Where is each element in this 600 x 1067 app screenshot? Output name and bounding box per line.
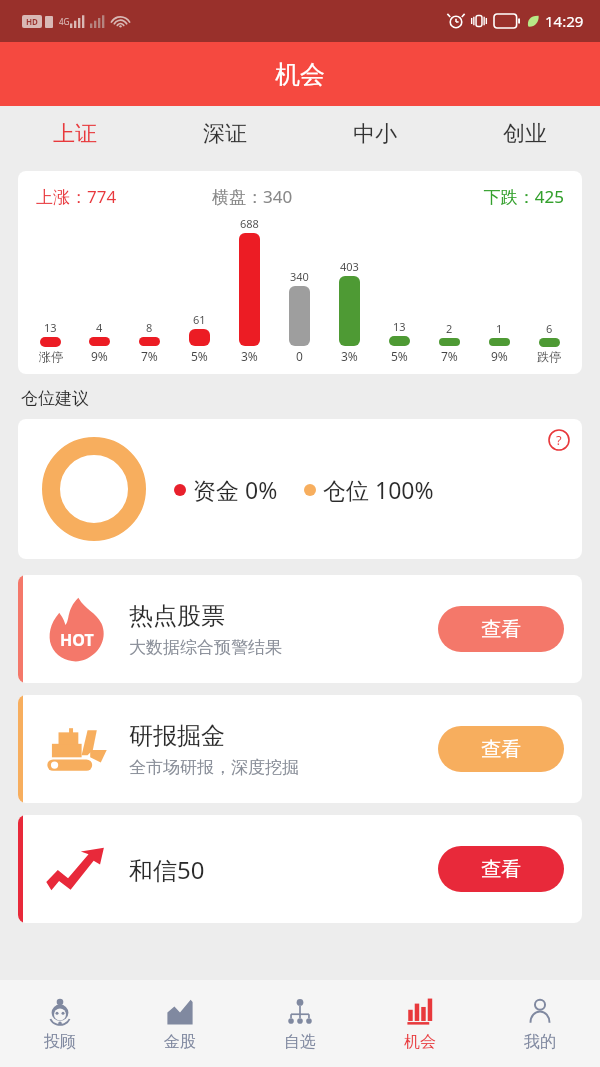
button[interactable]: 自选 — [240, 980, 360, 1067]
button[interactable]: 查看 — [438, 606, 564, 652]
staticText: 投顾 — [44, 1032, 76, 1052]
staticText: 跌停 — [537, 349, 561, 364]
staticText: 横盘：340 — [212, 185, 388, 208]
staticText: 5% — [391, 348, 408, 364]
staticText: 创业 — [503, 120, 547, 148]
button[interactable]: HOT — [18, 575, 582, 683]
button[interactable]: 机会 — [360, 980, 480, 1067]
staticText: 查看 — [481, 857, 521, 882]
staticText: 9% — [91, 348, 108, 364]
staticText: 688 — [240, 216, 259, 231]
staticText: 机会 — [404, 1032, 436, 1052]
staticText: 7% — [141, 348, 158, 364]
staticText: 自选 — [284, 1032, 316, 1052]
staticText: 资金 0% — [193, 474, 278, 505]
staticText: 8 — [146, 320, 153, 335]
button[interactable]: 中小 — [300, 106, 450, 162]
staticText: 仓位建议 — [21, 388, 89, 409]
staticText: 大数据综合预警结果 — [129, 637, 282, 658]
staticText: 金股 — [164, 1032, 196, 1052]
staticText: 403 — [340, 259, 359, 274]
button[interactable]: 创业 — [450, 106, 600, 162]
button[interactable]: 金股 — [120, 980, 240, 1067]
staticText: 3% — [341, 348, 358, 364]
staticText: 上涨：774 — [36, 185, 212, 208]
staticText: 9% — [491, 348, 508, 364]
staticText: HD — [26, 16, 38, 27]
staticText: 4 — [96, 320, 103, 335]
staticText: ? — [556, 431, 562, 449]
button[interactable]: 深证 — [150, 106, 300, 162]
button[interactable]: 查看 — [438, 846, 564, 892]
staticText: 4G — [59, 16, 70, 27]
staticText: 涨停 — [39, 349, 63, 364]
staticText: 和信50 — [129, 853, 205, 886]
staticText: 61 — [193, 312, 206, 327]
staticText: 340 — [290, 269, 309, 284]
button[interactable]: 帮助 — [548, 429, 570, 451]
staticText: 深证 — [203, 120, 247, 148]
staticText: 7% — [441, 348, 458, 364]
button[interactable]: 研报掘金 — [18, 695, 582, 803]
button[interactable]: 和信50 — [18, 815, 582, 923]
staticText: 下跌：425 — [388, 185, 564, 208]
staticText: 13 — [393, 319, 406, 334]
staticText: 6 — [546, 321, 553, 336]
staticText: 全市场研报，深度挖掘 — [129, 757, 299, 778]
button[interactable]: 投顾 — [0, 980, 120, 1067]
staticText: 13 — [44, 320, 57, 335]
staticText: 研报掘金 — [129, 721, 225, 751]
staticText: 1 — [496, 321, 503, 336]
staticText: HOT — [60, 629, 94, 651]
staticText: 14:29 — [545, 11, 584, 31]
staticText: 查看 — [481, 617, 521, 642]
staticText: 热点股票 — [129, 601, 225, 631]
staticText: 5% — [191, 348, 208, 364]
button[interactable]: 上证 — [0, 106, 150, 162]
staticText: 0 — [296, 348, 303, 364]
staticText: 我的 — [524, 1032, 556, 1052]
button[interactable]: 查看 — [438, 726, 564, 772]
staticText: 查看 — [481, 737, 521, 762]
button[interactable]: 资金 0% — [18, 419, 582, 559]
button[interactable]: 我的 — [480, 980, 600, 1067]
staticText: 中小 — [353, 120, 397, 148]
staticText: 3% — [241, 348, 258, 364]
staticText: 仓位 100% — [323, 474, 434, 505]
staticText: 上证 — [53, 120, 97, 148]
staticText: 2 — [446, 321, 453, 336]
staticText: 机会 — [275, 59, 325, 90]
